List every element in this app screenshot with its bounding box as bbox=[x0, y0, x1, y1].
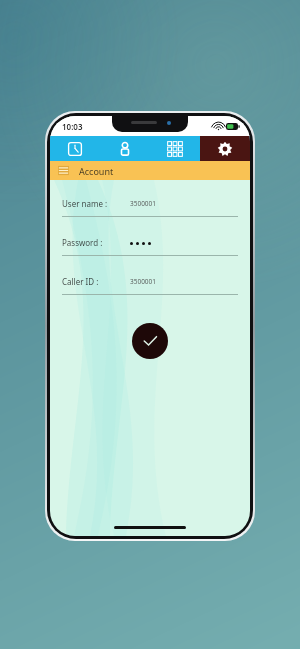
staticText: 3500001 bbox=[130, 277, 157, 286]
button[interactable]: Confirm bbox=[132, 323, 168, 359]
staticText: 10:03 bbox=[62, 121, 83, 132]
button[interactable]: User name : bbox=[62, 198, 238, 217]
button[interactable]: Caller ID : bbox=[62, 276, 238, 295]
button[interactable]: Contacts bbox=[100, 136, 150, 161]
staticText: Password : bbox=[62, 237, 103, 248]
staticText: User name : bbox=[62, 198, 108, 209]
button[interactable]: Clock bbox=[50, 136, 100, 161]
button[interactable]: Password : bbox=[62, 237, 238, 256]
staticText: 3500001 bbox=[130, 199, 157, 208]
button[interactable]: Keypad bbox=[150, 136, 200, 161]
button[interactable]: Settings bbox=[200, 136, 250, 161]
staticText: Account bbox=[79, 165, 114, 177]
button[interactable]: Account bbox=[50, 161, 250, 180]
staticText: Caller ID : bbox=[62, 276, 99, 287]
